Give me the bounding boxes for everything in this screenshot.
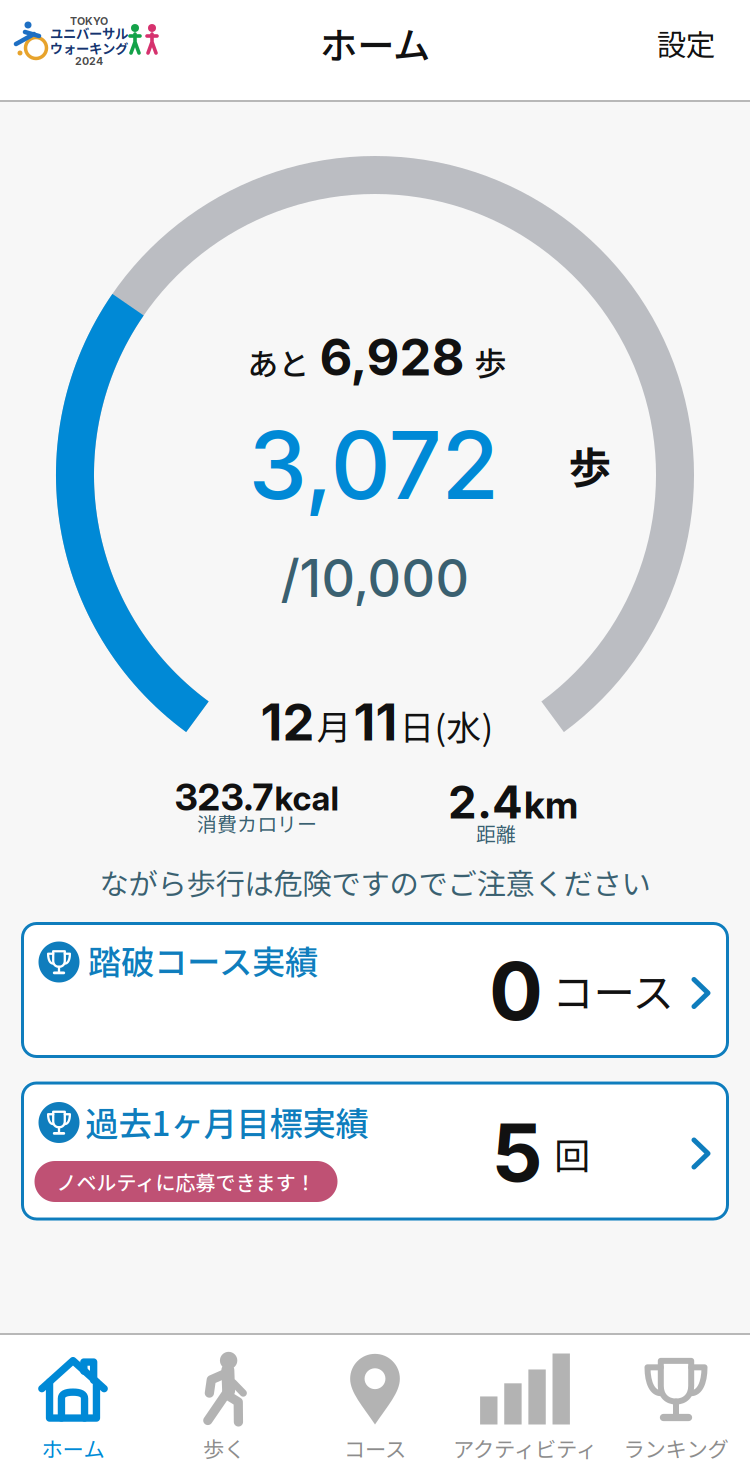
staticText: 323.7 xyxy=(174,774,273,820)
button[interactable]: ランキング xyxy=(600,1336,750,1476)
staticText: コース xyxy=(344,1433,406,1463)
staticText: 6,928 xyxy=(319,326,464,388)
staticText: ウォーキング xyxy=(50,38,128,58)
staticText: 日(水) xyxy=(399,700,493,750)
staticText: ホーム xyxy=(41,1433,104,1463)
staticText: 3,072 xyxy=(248,408,499,521)
staticText: 歩 xyxy=(474,338,506,385)
button[interactable]: 設定 xyxy=(631,0,741,88)
staticText: 消費カロリー xyxy=(197,808,317,837)
staticText: ランキング xyxy=(623,1433,728,1463)
staticText: /10,000 xyxy=(280,546,469,609)
staticText: あと xyxy=(247,340,309,384)
button[interactable]: コース xyxy=(299,1336,451,1476)
staticText: 2.4 xyxy=(448,775,523,829)
button[interactable]: 踏破コース実績 xyxy=(21,922,729,1058)
button[interactable]: 過去1ヶ月目標実績 xyxy=(21,1081,729,1220)
staticText: km xyxy=(524,782,578,827)
staticText: 距離 xyxy=(476,818,516,847)
staticText: コース xyxy=(552,960,673,1020)
staticText: ノベルティに応募できます！ xyxy=(56,1167,315,1196)
staticText: 0 xyxy=(489,943,543,1039)
staticText: ホーム xyxy=(320,16,430,70)
staticText: 5 xyxy=(491,1104,542,1201)
staticText: 月 xyxy=(316,700,351,750)
staticText: 回 xyxy=(554,1127,590,1179)
staticText: 設定 xyxy=(657,22,715,64)
staticText: 踏破コース実績 xyxy=(88,936,318,984)
staticText: 歩く xyxy=(203,1433,245,1463)
staticText: ユニバーサル xyxy=(50,23,128,43)
staticText: アクティビティ xyxy=(453,1433,597,1463)
staticText: 12 xyxy=(260,691,314,753)
button[interactable]: 歩く xyxy=(148,1336,300,1476)
staticText: kcal xyxy=(274,778,339,819)
staticText: 11 xyxy=(353,691,397,753)
staticText: 2024 xyxy=(75,54,103,67)
staticText: 過去1ヶ月目標実績 xyxy=(85,1097,368,1146)
button[interactable]: ホーム xyxy=(0,1336,149,1476)
staticText: ながら歩行は危険ですのでご注意ください xyxy=(99,861,650,903)
staticText: 歩 xyxy=(568,434,611,496)
staticText: TOKYO xyxy=(70,14,108,27)
button[interactable]: アクティビティ xyxy=(449,1336,601,1476)
